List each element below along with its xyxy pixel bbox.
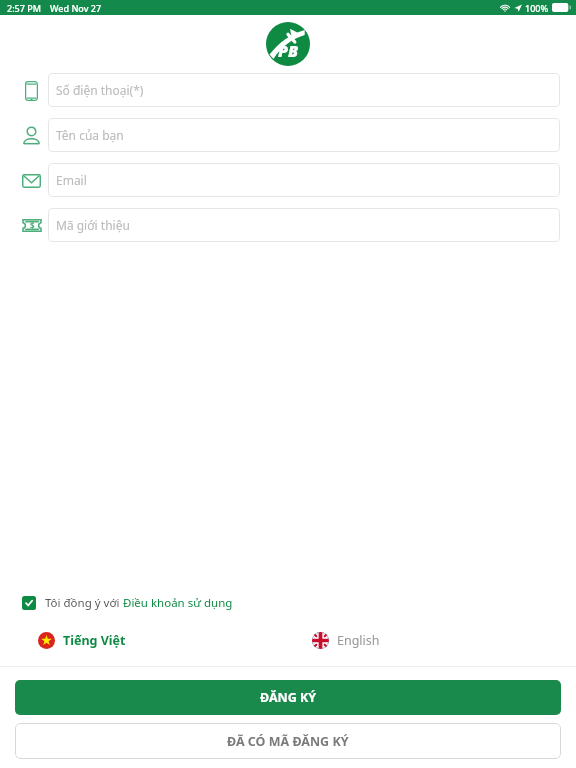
staticText: English bbox=[337, 632, 380, 649]
button[interactable]: Email bbox=[0, 163, 576, 197]
other: Your name bbox=[22, 126, 41, 145]
button[interactable]: ĐĂNG KÝ bbox=[15, 680, 561, 715]
staticText: Mã giới thiệu bbox=[56, 217, 130, 233]
button[interactable]: Your name bbox=[0, 118, 576, 152]
other: English bbox=[312, 632, 329, 649]
staticText: Tiếng Việt bbox=[63, 632, 126, 649]
staticText: Điều khoản sử dụng bbox=[123, 595, 233, 611]
staticText: Tên của bạn bbox=[56, 127, 124, 143]
button[interactable]: English bbox=[288, 629, 560, 652]
staticText: ĐÃ CÓ MÃ ĐĂNG KÝ bbox=[227, 733, 349, 750]
button[interactable]: Referral code bbox=[0, 208, 576, 242]
staticText: 100% bbox=[525, 2, 549, 14]
staticText: PB bbox=[278, 40, 299, 62]
staticText: 2:57 PM bbox=[7, 2, 41, 14]
other: Referral code bbox=[22, 219, 42, 232]
staticText: ĐĂNG KÝ bbox=[260, 689, 317, 706]
other: Email bbox=[22, 174, 41, 188]
staticText: Email bbox=[56, 172, 87, 188]
staticText: $ bbox=[30, 220, 35, 231]
button[interactable]: Phone number bbox=[0, 73, 576, 107]
staticText: Số điện thoại(*) bbox=[56, 82, 144, 98]
button[interactable]: ĐÃ CÓ MÃ ĐĂNG KÝ bbox=[15, 723, 561, 759]
button[interactable]: Tôi đồng ý với bbox=[16, 591, 243, 615]
button[interactable]: Vietnamese bbox=[16, 629, 288, 652]
staticText: Wed Nov 27 bbox=[50, 2, 102, 14]
staticText: Tôi đồng ý với bbox=[45, 595, 123, 611]
other: Phone number bbox=[25, 81, 38, 101]
other: Vietnamese bbox=[38, 632, 55, 649]
